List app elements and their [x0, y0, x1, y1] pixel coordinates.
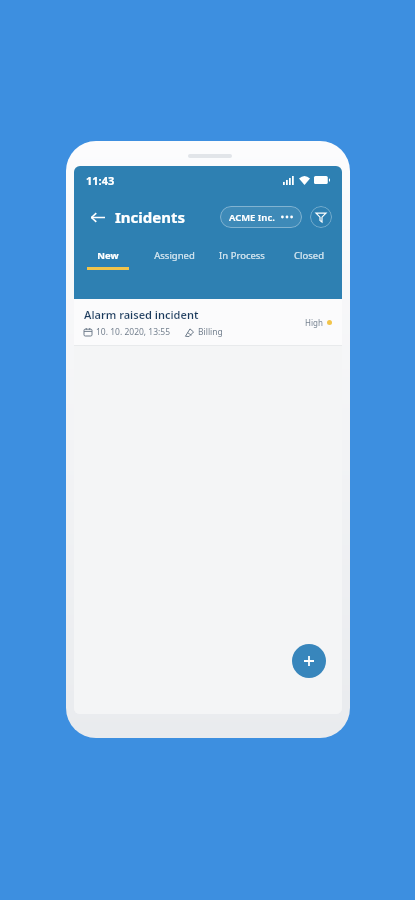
staticText: Assigned — [154, 249, 195, 262]
staticText: Incidents — [115, 207, 186, 227]
staticText: 11:43 — [86, 173, 115, 188]
button[interactable]: Assigned — [141, 240, 208, 270]
staticText: Billing — [198, 326, 223, 338]
button[interactable]: Closed — [275, 240, 342, 270]
staticText: ACME Inc. — [229, 211, 275, 224]
button[interactable]: ACME Inc. — [220, 206, 302, 228]
button[interactable]: Back — [84, 204, 110, 230]
staticText: 10. 10. 2020, 13:55 — [96, 326, 171, 338]
button[interactable]: In Process — [208, 240, 275, 270]
button[interactable]: Add incident — [292, 644, 326, 678]
button[interactable]: Alarm raised incident — [74, 299, 342, 345]
staticText: Alarm raised incident — [84, 307, 199, 322]
button[interactable]: Filter — [310, 206, 332, 228]
button[interactable]: New — [74, 240, 141, 270]
staticText: New — [97, 249, 119, 262]
staticText: Closed — [294, 249, 324, 262]
staticText: In Process — [219, 249, 265, 262]
staticText: High — [305, 317, 323, 328]
